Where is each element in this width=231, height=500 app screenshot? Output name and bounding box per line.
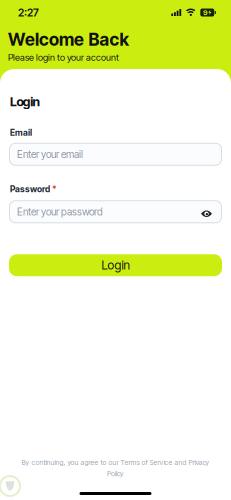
staticText: 9: [203, 8, 208, 17]
staticText: Policy: [107, 470, 124, 478]
staticText: Password: [10, 184, 50, 194]
staticText: By continuing, you agree to our Terms of…: [21, 458, 209, 467]
staticText: Enter your email: [17, 148, 83, 160]
button[interactable]: Password: [9, 200, 222, 223]
button[interactable]: Email: [9, 143, 222, 166]
staticText: *: [52, 184, 57, 194]
button[interactable]: Login: [9, 254, 222, 276]
staticText: Enter your password: [17, 206, 103, 218]
staticText: Welcome: [8, 29, 84, 50]
staticText: Login: [101, 258, 129, 272]
staticText: Email: [10, 127, 32, 138]
staticText: 2:27: [18, 6, 39, 19]
staticText: Please login to your account: [8, 52, 119, 63]
staticText: Back: [88, 29, 129, 50]
button[interactable]: Show password: [201, 208, 212, 216]
staticText: Login: [10, 94, 40, 109]
